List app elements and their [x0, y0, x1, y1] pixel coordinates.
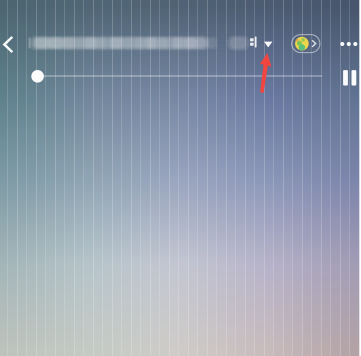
button[interactable]: Pause — [337, 65, 361, 91]
button[interactable]: Episodes — [257, 32, 279, 56]
button[interactable]: Host — [292, 35, 320, 53]
button[interactable]: Back — [0, 29, 19, 59]
button[interactable]: More — [337, 33, 361, 55]
